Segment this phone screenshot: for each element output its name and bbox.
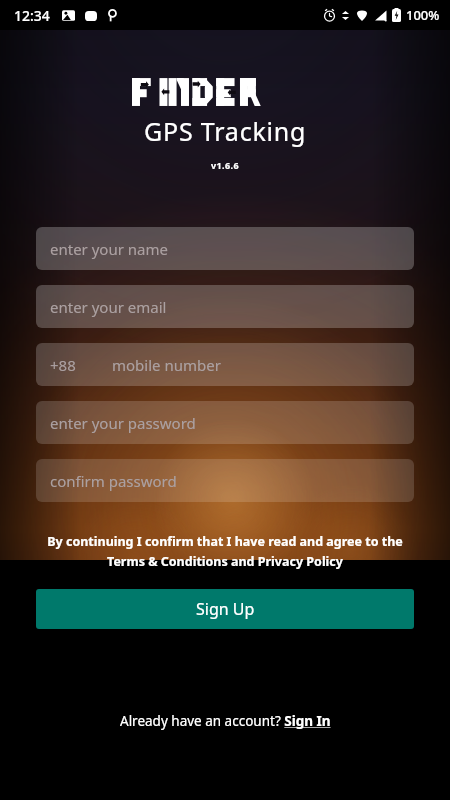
- staticText: 12:34: [14, 6, 50, 25]
- staticText: confirm password: [50, 471, 177, 491]
- button[interactable]: Already have an account? Sign In: [112, 708, 339, 734]
- staticText: v1.6.6: [211, 159, 240, 171]
- staticText: Sign Up: [196, 598, 255, 620]
- staticText: enter your password: [50, 413, 196, 433]
- staticText: 100%: [406, 6, 440, 24]
- button[interactable]: confirm password: [36, 459, 414, 502]
- button[interactable]: enter your name: [36, 227, 414, 270]
- staticText: By continuing I confirm that I have read…: [47, 533, 403, 550]
- staticText: Terms & Conditions and Privacy Policy: [107, 553, 343, 570]
- staticText: mobile number: [112, 355, 221, 375]
- button[interactable]: +88: [36, 343, 414, 386]
- staticText: +88: [50, 355, 76, 375]
- button[interactable]: Sign Up: [36, 589, 414, 629]
- button[interactable]: enter your password: [36, 401, 414, 444]
- staticText: enter your name: [50, 239, 168, 259]
- staticText: Already have an account? Sign In: [120, 712, 331, 730]
- staticText: enter your email: [50, 297, 167, 317]
- button[interactable]: enter your email: [36, 285, 414, 328]
- staticText: GPS Tracking: [144, 114, 307, 148]
- button[interactable]: By continuing I confirm that I have read…: [26, 533, 424, 570]
